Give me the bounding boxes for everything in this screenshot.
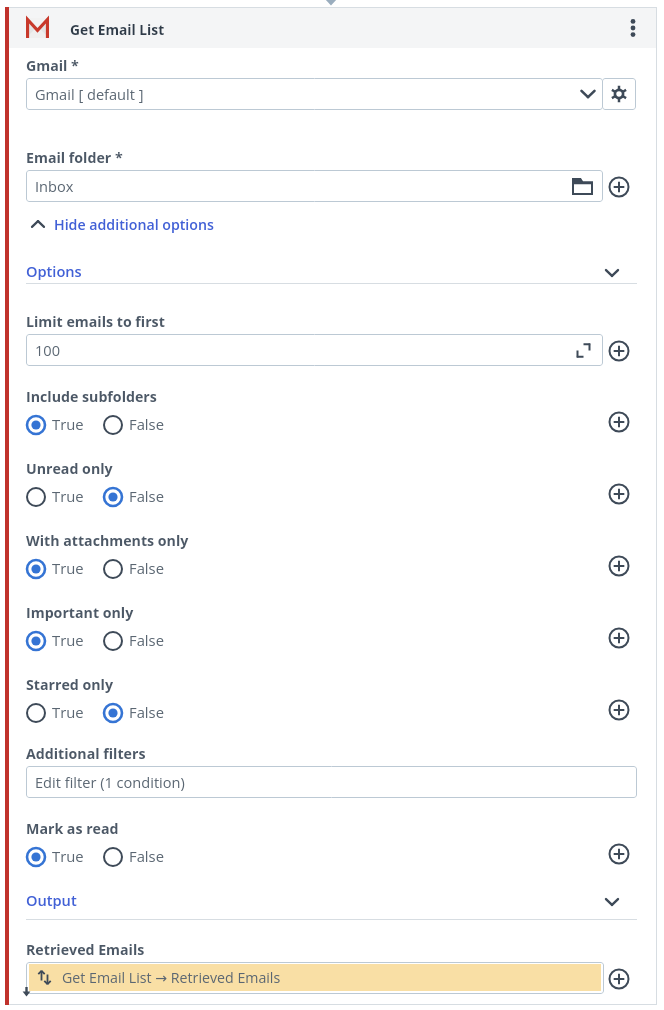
staticText: Additional filters (26, 744, 146, 763)
staticText: True (52, 702, 84, 722)
staticText: Starred only (26, 675, 113, 694)
button[interactable]: Add dynamic value for Important only (606, 625, 632, 651)
staticText: False (129, 486, 164, 506)
button[interactable]: Add dynamic value for limit (606, 338, 632, 364)
button[interactable]: True (25, 846, 84, 868)
staticText: Output (26, 890, 77, 910)
button[interactable]: Add dynamic value for Unread only (606, 481, 632, 507)
staticText: 100 (35, 340, 563, 360)
staticText: False (129, 702, 164, 722)
staticText: False (129, 846, 164, 866)
button[interactable]: False (102, 486, 164, 508)
staticText: Get Email List → Retrieved Emails (62, 968, 281, 987)
button[interactable]: True (25, 414, 84, 436)
staticText: True (52, 630, 84, 650)
staticText: Limit emails to first (26, 312, 165, 331)
staticText: Retrieved Emails (26, 940, 145, 959)
button[interactable]: False (102, 558, 164, 580)
staticText: Hide additional options (54, 215, 214, 234)
button[interactable]: False (102, 630, 164, 652)
staticText: False (129, 630, 164, 650)
button[interactable]: Inbox (26, 170, 603, 202)
staticText: Email folder * (26, 148, 123, 167)
button[interactable]: Add dynamic value for Mark as read (606, 841, 632, 867)
staticText: Unread only (26, 459, 113, 478)
button[interactable]: Output (26, 887, 637, 913)
staticText: Mark as read (26, 819, 119, 838)
button[interactable]: False (102, 414, 164, 436)
staticText: Important only (26, 603, 134, 622)
button[interactable]: Settings (602, 78, 636, 110)
button[interactable]: Get Email List → Retrieved Emails (26, 962, 604, 994)
staticText: Get Email List (70, 20, 165, 39)
button[interactable]: Add dynamic value for Include subfolders (606, 409, 632, 435)
staticText: Inbox (35, 176, 562, 196)
staticText: False (129, 558, 164, 578)
staticText: With attachments only (26, 531, 189, 550)
button[interactable]: True (25, 702, 84, 724)
staticText: True (52, 414, 84, 434)
button[interactable]: More options (619, 14, 647, 42)
button[interactable]: False (102, 846, 164, 868)
button[interactable]: True (25, 486, 84, 508)
staticText: False (129, 414, 164, 434)
button[interactable]: Edit filter (1 condition) (26, 766, 637, 798)
button[interactable]: Options (26, 258, 637, 284)
staticText: Gmail * (26, 56, 79, 75)
button[interactable] (9, 8, 656, 48)
button[interactable]: False (102, 702, 164, 724)
button[interactable]: Add dynamic value for Starred only (606, 697, 632, 723)
button[interactable]: Gmail [ default ] (26, 78, 603, 110)
staticText: Include subfolders (26, 387, 157, 406)
button[interactable]: True (25, 630, 84, 652)
staticText: True (52, 846, 84, 866)
button[interactable]: Add dynamic value for With attachments o… (606, 553, 632, 579)
staticText: Edit filter (1 condition) (35, 772, 637, 792)
button[interactable]: 100 (26, 334, 603, 366)
button[interactable]: Hide additional options (26, 212, 214, 236)
button[interactable]: Add output (606, 966, 632, 992)
button[interactable]: True (25, 558, 84, 580)
button[interactable]: Add dynamic value for Email folder (606, 174, 632, 200)
staticText: Options (26, 261, 82, 281)
staticText: True (52, 558, 84, 578)
staticText: Gmail [ default ] (35, 84, 573, 104)
staticText: True (52, 486, 84, 506)
